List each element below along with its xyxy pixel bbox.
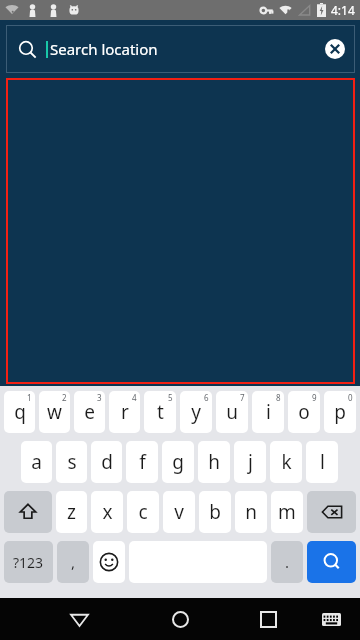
staticText: m [278,499,296,525]
staticText: 7 [240,392,245,403]
button[interactable]: p [324,391,356,433]
button[interactable]: x [91,491,123,533]
staticText: 9 [312,392,317,403]
button[interactable]: ?123 [4,541,53,583]
button[interactable]: y [180,391,212,433]
staticText: 4:14 [331,2,355,18]
button[interactable]: z [56,491,87,533]
staticText: c [138,499,148,525]
button[interactable]: n [235,491,267,533]
staticText: x [102,499,113,525]
staticText: s [67,449,77,475]
staticText: u [226,399,238,425]
button[interactable]: t [144,391,176,433]
staticText: o [298,399,310,425]
staticText: 8 [276,392,281,403]
button[interactable]: i [252,391,284,433]
staticText: l [320,449,325,475]
staticText: 4 [132,392,137,403]
button[interactable]: d [91,441,122,483]
button[interactable]: c [127,491,159,533]
button[interactable]: . [271,541,303,583]
button[interactable]: j [234,441,266,483]
button[interactable]: a [21,441,52,483]
staticText: z [67,499,76,525]
button[interactable]: f [126,441,158,483]
staticText: f [139,449,146,475]
staticText: 2 [62,392,67,403]
staticText: Search location [50,39,158,59]
button[interactable]: e [74,391,105,433]
button[interactable]: o [288,391,320,433]
button[interactable]: u [216,391,248,433]
button[interactable]: Home [163,602,197,636]
staticText: k [281,449,292,475]
button[interactable]: k [270,441,302,483]
button[interactable]: l [306,441,338,483]
staticText: n [245,499,257,525]
staticText: w [47,399,62,425]
staticText: v [174,499,184,525]
staticText: b [209,499,221,525]
staticText: ?123 [13,553,44,572]
staticText: j [248,449,253,475]
button[interactable]: g [162,441,194,483]
staticText: r [121,399,129,425]
button[interactable]: Search [307,541,356,583]
button[interactable]: Backspace [307,491,356,533]
button[interactable]: m [271,491,303,533]
button[interactable]: h [198,441,230,483]
button[interactable]: q [4,391,35,433]
staticText: 3 [97,392,102,403]
button[interactable]: b [199,491,231,533]
button[interactable]: Switch keyboard [316,604,346,634]
button[interactable]: Back [62,602,96,636]
button[interactable]: Clear [325,39,345,59]
staticText: t [157,399,164,425]
staticText: h [208,449,220,475]
button[interactable]: Recents [251,602,285,636]
staticText: y [191,399,201,425]
button[interactable]: v [163,491,195,533]
button[interactable]: Search [6,25,355,73]
button[interactable]: , [57,541,89,583]
button[interactable]: Shift [4,491,52,533]
staticText: e [84,399,95,425]
other: Search [18,40,37,59]
button[interactable]: r [109,391,140,433]
staticText: a [31,449,42,475]
staticText: d [101,449,113,475]
button[interactable]: s [56,441,87,483]
button[interactable]: Emoji [93,541,125,583]
button[interactable]: w [39,391,70,433]
staticText: 5 [168,392,173,403]
staticText: i [266,399,271,425]
staticText: g [172,449,184,475]
staticText: 0 [348,392,353,403]
staticText: 1 [27,392,32,403]
staticText: , [71,552,76,572]
staticText: p [334,399,346,425]
staticText: q [14,399,26,425]
staticText: . [285,552,290,572]
staticText: 6 [204,392,209,403]
